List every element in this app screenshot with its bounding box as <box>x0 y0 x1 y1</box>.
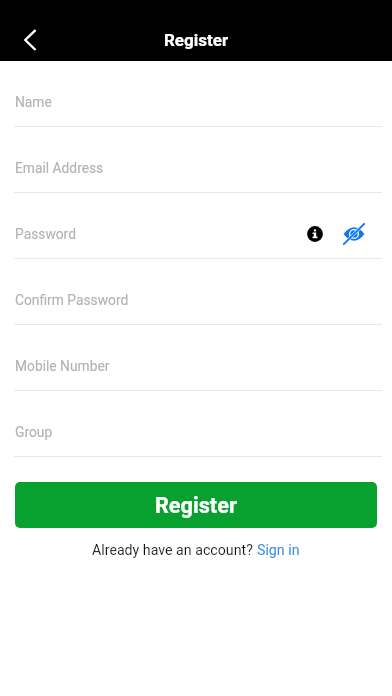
staticText: Group <box>15 424 53 440</box>
button[interactable]: Show password <box>342 222 366 246</box>
button[interactable]: Back <box>9 19 51 61</box>
staticText: Mobile Number <box>15 358 110 374</box>
staticText: Password <box>15 226 76 242</box>
staticText: Already have an account? <box>92 542 257 559</box>
button[interactable]: Register <box>15 482 377 528</box>
button[interactable]: Confirm Password <box>0 259 392 325</box>
button[interactable]: Name <box>0 61 392 127</box>
button[interactable]: Sign in <box>257 542 300 559</box>
button[interactable]: Group <box>0 391 392 457</box>
staticText: Register <box>155 493 237 518</box>
staticText: Name <box>15 94 52 110</box>
staticText: Register <box>164 30 229 50</box>
button[interactable]: Email Address <box>0 127 392 193</box>
button[interactable]: Mobile Number <box>0 325 392 391</box>
button[interactable]: Info <box>305 224 325 244</box>
staticText: Confirm Password <box>15 292 129 308</box>
staticText: Email Address <box>15 160 104 176</box>
button[interactable]: Password <box>0 193 392 259</box>
